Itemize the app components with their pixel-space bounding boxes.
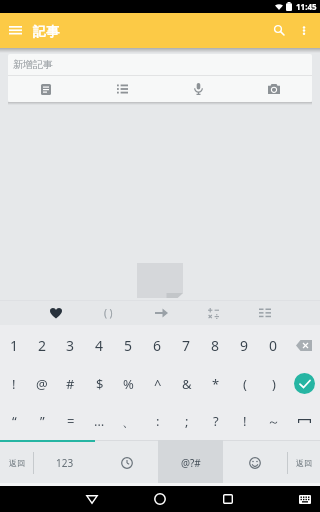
button[interactable]: [160, 76, 236, 102]
staticText: !: [243, 412, 247, 430]
button[interactable]: 新增記事: [8, 54, 312, 75]
button[interactable]: 7: [172, 325, 201, 365]
button[interactable]: [140, 486, 180, 512]
button[interactable]: %: [114, 365, 143, 402]
button[interactable]: [29, 301, 82, 325]
staticText: 4: [95, 336, 104, 355]
button[interactable]: 返回: [288, 440, 320, 486]
button[interactable]: [292, 13, 316, 48]
staticText: @?#: [181, 456, 201, 470]
button[interactable]: @?#: [158, 440, 223, 486]
button[interactable]: ): [259, 365, 288, 402]
staticText: 123: [56, 456, 74, 470]
button[interactable]: [288, 365, 320, 402]
staticText: (: [243, 375, 247, 393]
staticText: 2: [38, 336, 47, 355]
staticText: ^: [154, 375, 162, 393]
staticText: &: [182, 375, 192, 393]
button[interactable]: 0: [259, 325, 288, 365]
staticText: :: [156, 412, 160, 430]
staticText: $: [96, 375, 104, 393]
button[interactable]: ～: [259, 402, 288, 440]
button[interactable]: ”: [28, 402, 56, 440]
button[interactable]: 、: [114, 402, 143, 440]
button[interactable]: [0, 13, 30, 48]
button[interactable]: #: [56, 365, 85, 402]
button[interactable]: [293, 486, 317, 512]
button[interactable]: ;: [172, 402, 201, 440]
button[interactable]: 6: [143, 325, 172, 365]
button[interactable]: [8, 76, 84, 102]
staticText: 8: [211, 336, 220, 355]
staticText: ～: [267, 413, 280, 429]
button[interactable]: 123: [34, 440, 95, 486]
button[interactable]: 2: [28, 325, 56, 365]
staticText: @: [36, 375, 48, 393]
button[interactable]: [266, 13, 292, 48]
staticText: %: [123, 375, 134, 393]
staticText: 11:45: [296, 1, 317, 12]
button[interactable]: (: [230, 365, 259, 402]
button[interactable]: ^: [143, 365, 172, 402]
button[interactable]: 9: [230, 325, 259, 365]
button[interactable]: &: [172, 365, 201, 402]
staticText: ?: [213, 412, 219, 430]
staticText: “: [12, 412, 17, 430]
button[interactable]: [208, 486, 248, 512]
staticText: ”: [40, 412, 45, 430]
button[interactable]: [135, 301, 187, 325]
button[interactable]: [288, 402, 320, 440]
button[interactable]: …: [85, 402, 114, 440]
button[interactable]: [72, 486, 112, 512]
button[interactable]: $: [85, 365, 114, 402]
button[interactable]: [187, 301, 239, 325]
button[interactable]: :: [143, 402, 172, 440]
button[interactable]: !: [0, 365, 28, 402]
button[interactable]: ( ): [82, 301, 135, 325]
button[interactable]: 3: [56, 325, 85, 365]
staticText: …: [94, 412, 105, 430]
staticText: 5: [124, 336, 133, 355]
button[interactable]: [223, 440, 287, 486]
button[interactable]: “: [0, 402, 28, 440]
button[interactable]: [288, 325, 320, 365]
staticText: 7: [182, 336, 191, 355]
staticText: 、: [122, 413, 135, 429]
button[interactable]: 1: [0, 325, 28, 365]
staticText: ): [272, 375, 276, 393]
staticText: 1: [10, 336, 19, 355]
staticText: ;: [185, 412, 189, 430]
button[interactable]: =: [56, 402, 85, 440]
staticText: ( ): [104, 306, 113, 320]
button[interactable]: @: [28, 365, 56, 402]
staticText: #: [66, 375, 75, 393]
staticText: 0: [269, 336, 278, 355]
staticText: 返回: [296, 458, 312, 468]
staticText: =: [67, 412, 75, 430]
button[interactable]: 4: [85, 325, 114, 365]
button[interactable]: *: [201, 365, 230, 402]
button[interactable]: 8: [201, 325, 230, 365]
staticText: 6: [153, 336, 162, 355]
button[interactable]: [239, 301, 291, 325]
staticText: *: [212, 375, 220, 393]
staticText: 3: [66, 336, 75, 355]
staticText: 返回: [9, 458, 25, 468]
button[interactable]: [84, 76, 160, 102]
button[interactable]: !: [230, 402, 259, 440]
staticText: 新增記事: [13, 58, 53, 71]
staticText: 9: [240, 336, 249, 355]
staticText: !: [12, 375, 16, 393]
button[interactable]: [294, 373, 315, 394]
button[interactable]: 返回: [0, 440, 33, 486]
staticText: 記事: [33, 23, 59, 39]
button[interactable]: ?: [201, 402, 230, 440]
button[interactable]: [95, 440, 158, 486]
button[interactable]: 5: [114, 325, 143, 365]
button[interactable]: [236, 76, 312, 102]
